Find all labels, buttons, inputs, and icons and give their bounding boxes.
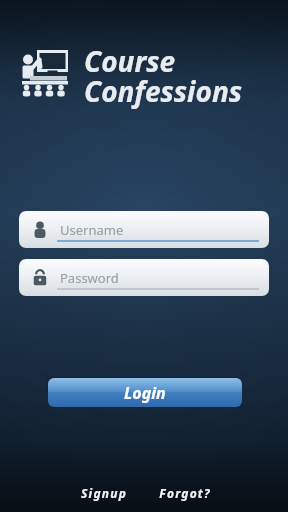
staticText: Login: [124, 382, 166, 404]
other: Course Confessions logo: [20, 47, 70, 97]
button[interactable]: Username: [19, 211, 269, 248]
staticText: Forgot?: [159, 485, 211, 501]
button[interactable]: Login: [46, 376, 243, 408]
staticText: Signup: [81, 485, 127, 501]
staticText: Confessions: [84, 72, 243, 110]
staticText: Username: [60, 221, 124, 239]
button[interactable]: Forgot?: [152, 483, 218, 503]
button[interactable]: Password: [19, 259, 269, 296]
staticText: Password: [60, 269, 119, 287]
staticText: Course: [84, 42, 176, 80]
button[interactable]: Signup: [72, 483, 136, 503]
